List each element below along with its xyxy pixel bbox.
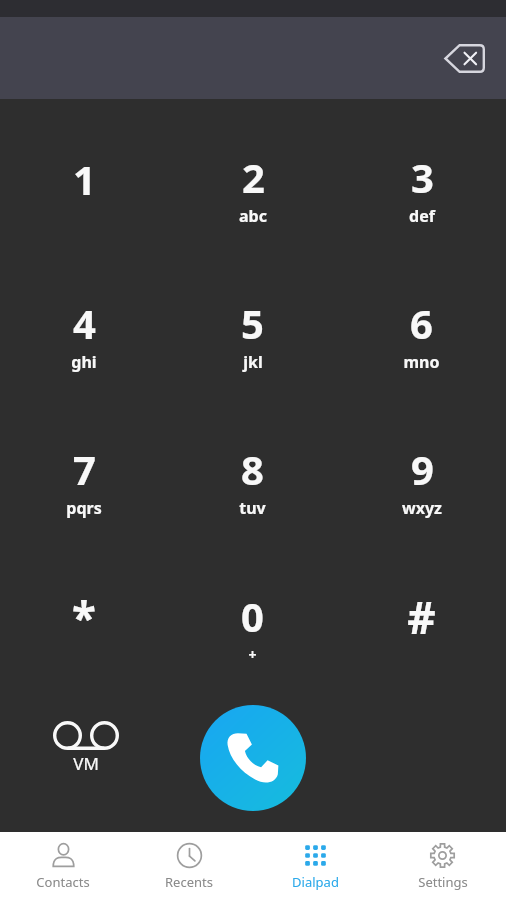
staticText: 6 — [410, 296, 433, 350]
staticText: Dialpad — [292, 873, 339, 891]
button[interactable]: 6 — [337, 261, 506, 407]
button[interactable]: 9 — [337, 407, 506, 553]
staticText: 2 — [242, 150, 265, 204]
button[interactable]: 2 — [168, 115, 337, 261]
staticText: wxyz — [402, 497, 442, 519]
staticText: abc — [239, 205, 267, 227]
button[interactable]: 1 — [0, 115, 168, 261]
staticText: 3 — [411, 150, 434, 204]
staticText: 0 — [241, 589, 264, 643]
button[interactable]: 5 — [168, 261, 337, 407]
staticText: + — [248, 645, 257, 664]
button[interactable]: 4 — [0, 261, 168, 407]
staticText: 7 — [73, 442, 96, 496]
button[interactable]: 0 — [168, 553, 337, 699]
button[interactable]: Backspace — [436, 35, 492, 81]
button[interactable]: * — [0, 553, 168, 699]
staticText: * — [72, 587, 96, 647]
staticText: 9 — [411, 442, 434, 496]
button[interactable]: Contacts — [0, 832, 126, 900]
button[interactable]: Voicemail — [45, 721, 127, 787]
staticText: tuv — [239, 497, 266, 519]
staticText: pqrs — [66, 497, 102, 519]
button[interactable]: 7 — [0, 407, 168, 553]
staticText: 8 — [241, 442, 264, 496]
staticText: mno — [403, 351, 440, 373]
button[interactable]: 8 — [168, 407, 337, 553]
staticText: Settings — [418, 873, 468, 891]
staticText: 1 — [73, 152, 96, 206]
staticText: VM — [73, 752, 99, 775]
staticText: jkl — [243, 351, 263, 373]
staticText: def — [409, 205, 435, 227]
staticText: ghi — [71, 351, 97, 373]
button[interactable]: Settings — [379, 832, 506, 900]
staticText: 5 — [241, 296, 264, 350]
button[interactable]: Call — [200, 705, 306, 811]
button[interactable]: Recents — [126, 832, 252, 900]
staticText: Recents — [165, 873, 213, 891]
button[interactable]: Dialpad — [252, 832, 379, 900]
button[interactable]: 3 — [337, 115, 506, 261]
staticText: 4 — [73, 296, 96, 350]
button[interactable]: # — [337, 553, 506, 699]
staticText: # — [407, 587, 436, 647]
staticText: Contacts — [36, 873, 90, 891]
